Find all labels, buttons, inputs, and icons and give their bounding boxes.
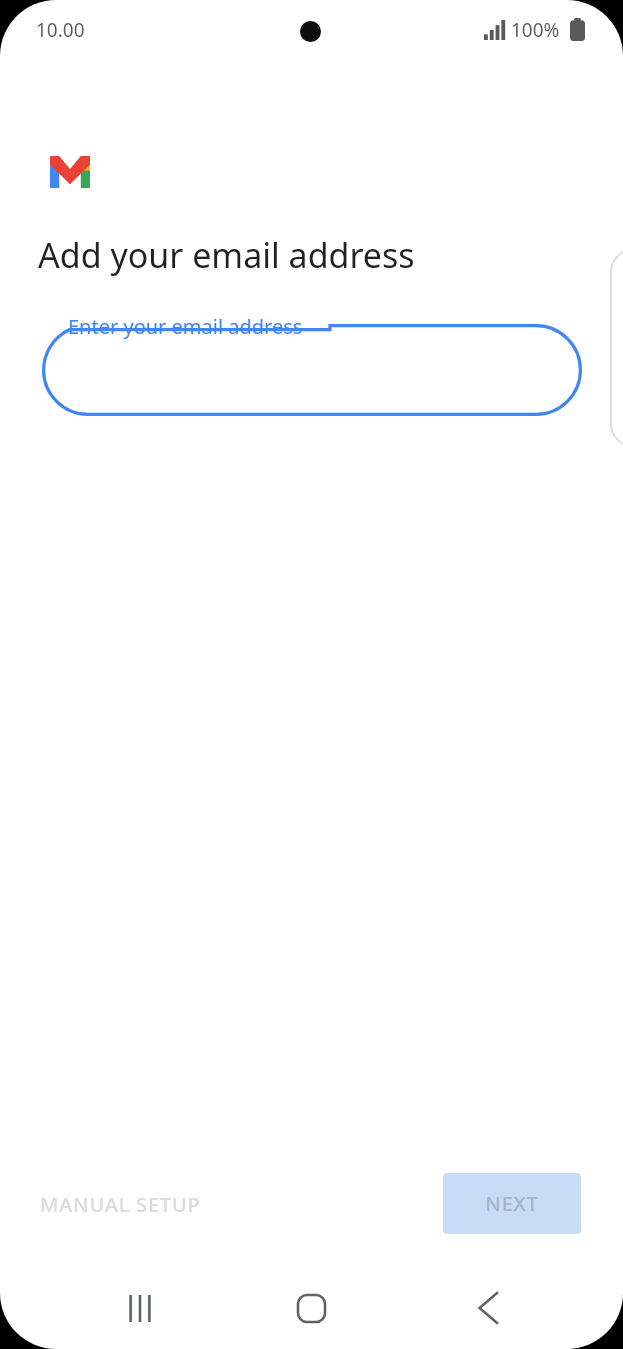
button[interactable]: Back: [448, 1278, 528, 1338]
button[interactable]: NEXT: [443, 1173, 581, 1234]
staticText: 100%: [511, 17, 560, 43]
button[interactable]: [42, 324, 582, 416]
button[interactable]: Home: [271, 1278, 351, 1338]
staticText: NEXT: [485, 1190, 539, 1217]
button[interactable]: MANUAL SETUP: [20, 1178, 250, 1230]
staticText: MANUAL SETUP: [40, 1191, 201, 1218]
staticText: Enter your email address: [68, 313, 303, 340]
staticText: 10.00: [36, 17, 85, 43]
staticText: Add your email address: [38, 232, 415, 278]
button[interactable]: Recents: [100, 1278, 180, 1338]
